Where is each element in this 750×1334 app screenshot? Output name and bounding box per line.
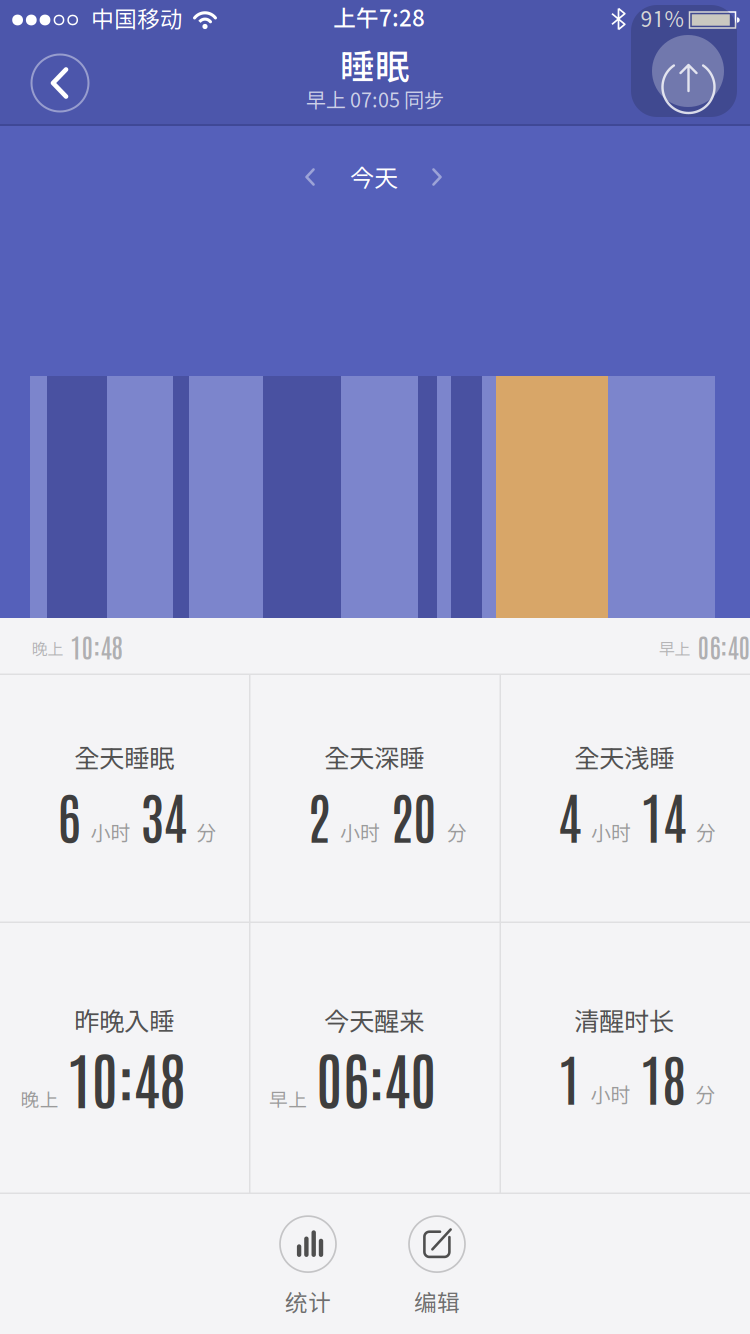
staticText: 34 bbox=[140, 780, 186, 850]
staticText: 18 bbox=[640, 1042, 685, 1112]
staticText: 昨晚入睡 bbox=[74, 1006, 174, 1036]
staticText: 2 bbox=[307, 780, 330, 850]
staticText: 清醒时长 bbox=[574, 1006, 674, 1036]
staticText: 小时 bbox=[340, 821, 380, 844]
staticText: 10:48 bbox=[70, 629, 122, 663]
staticText: 睡眠 bbox=[340, 45, 410, 86]
staticText: 分 bbox=[696, 821, 716, 844]
staticText: 分 bbox=[196, 821, 216, 844]
staticText: 小时 bbox=[591, 821, 631, 844]
staticText: 编辑 bbox=[414, 1289, 460, 1316]
staticText: 06:40 bbox=[697, 629, 750, 663]
staticText: 今天 bbox=[350, 164, 398, 192]
staticText: 小时 bbox=[590, 1083, 630, 1106]
button[interactable]: Share bbox=[631, 5, 737, 117]
staticText: 中国移动 bbox=[91, 6, 183, 32]
staticText: 全天浅睡 bbox=[574, 743, 674, 773]
button[interactable]: Back bbox=[24, 47, 96, 119]
staticText: 早上 bbox=[658, 639, 690, 658]
button[interactable]: 统计 bbox=[280, 1216, 336, 1316]
staticText: 分 bbox=[695, 1083, 715, 1106]
button[interactable]: Next day bbox=[415, 155, 459, 199]
staticText: 4 bbox=[558, 780, 581, 850]
staticText: 1 bbox=[558, 1042, 580, 1112]
staticText: 14 bbox=[641, 780, 686, 850]
staticText: 91% bbox=[640, 6, 683, 32]
button[interactable]: 编辑 bbox=[409, 1216, 465, 1316]
staticText: 上午7:28 bbox=[333, 5, 425, 31]
staticText: 统计 bbox=[285, 1289, 331, 1316]
staticText: 晚上 bbox=[31, 639, 63, 658]
staticText: 早上 07:05 同步 bbox=[306, 88, 444, 112]
button[interactable]: Previous day bbox=[288, 155, 332, 199]
staticText: 6 bbox=[57, 780, 80, 850]
staticText: 10:48 bbox=[67, 1037, 185, 1117]
staticText: 晚上 bbox=[20, 1089, 58, 1111]
staticText: 今天醒来 bbox=[324, 1006, 424, 1036]
staticText: 06:40 bbox=[316, 1037, 437, 1117]
staticText: 全天深睡 bbox=[324, 743, 424, 773]
staticText: 早上 bbox=[269, 1089, 307, 1111]
staticText: 分 bbox=[447, 821, 467, 844]
staticText: 小时 bbox=[90, 821, 130, 844]
staticText: 全天睡眠 bbox=[74, 743, 174, 773]
staticText: 20 bbox=[390, 780, 437, 850]
